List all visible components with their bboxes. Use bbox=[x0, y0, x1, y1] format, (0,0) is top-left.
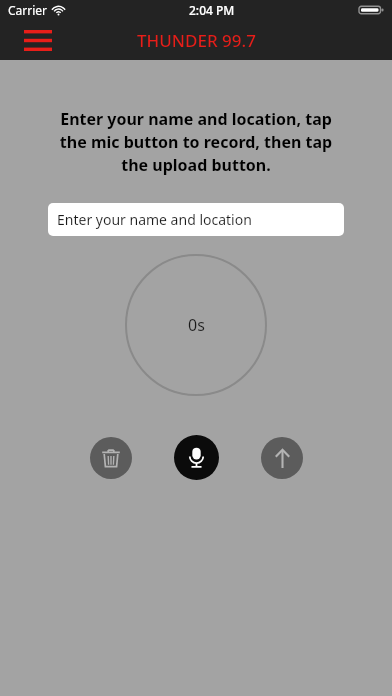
staticText: 2:04 PM bbox=[189, 2, 235, 18]
button[interactable]: Enter your name and location bbox=[48, 203, 344, 236]
button[interactable]: Upload bbox=[261, 437, 303, 479]
staticText: Carrier bbox=[8, 2, 48, 18]
staticText: Enter your name and location bbox=[57, 210, 252, 229]
staticText: THUNDER 99.7 bbox=[137, 29, 256, 52]
button[interactable]: Delete recording bbox=[90, 437, 132, 479]
button[interactable]: Menu bbox=[18, 23, 58, 57]
staticText: 0s bbox=[188, 314, 205, 336]
button[interactable]: Record bbox=[174, 435, 219, 480]
staticText: Enter your name and location, tap the mi… bbox=[50, 108, 342, 176]
